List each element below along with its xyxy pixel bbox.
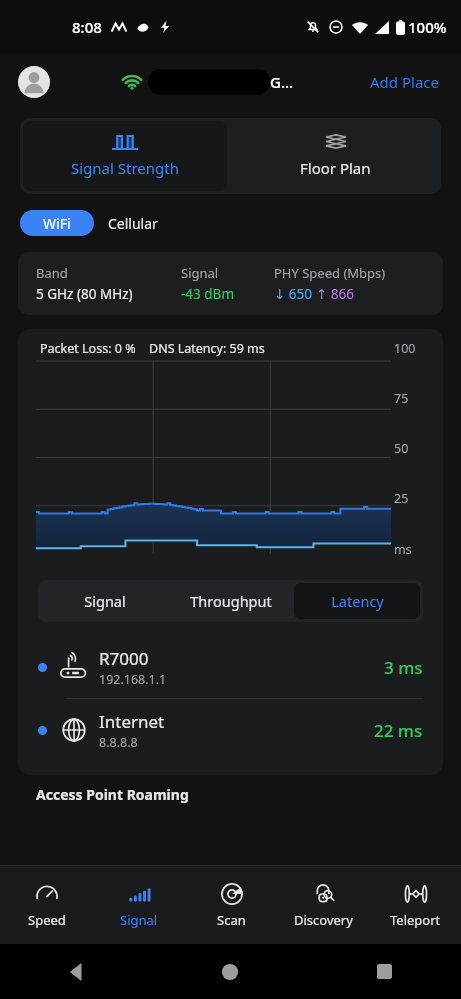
staticText: 8:08 [72, 17, 102, 37]
other: Back [68, 963, 86, 981]
staticText: Band [36, 264, 68, 282]
staticText: Signal Strength [71, 158, 179, 178]
staticText: DNS Latency: 59 ms [149, 340, 265, 357]
other: Home [221, 963, 239, 981]
button[interactable]: Signal [41, 583, 168, 619]
staticText: PHY Speed (Mbps) [274, 264, 386, 282]
button[interactable]: Floor Plan [230, 118, 441, 194]
staticText: 22 ms [374, 719, 423, 742]
staticText: ms [394, 541, 412, 558]
staticText: 50 [394, 440, 409, 457]
staticText: 75 [394, 390, 409, 407]
button[interactable]: WiFi [20, 210, 94, 236]
staticText: ↓ 650 [274, 285, 316, 303]
button[interactable]: R7000 [18, 636, 443, 698]
button[interactable]: Latency [294, 583, 420, 619]
staticText: 100% [408, 17, 447, 37]
staticText: Teleport [390, 911, 441, 929]
staticText: Signal [120, 911, 158, 929]
button[interactable]: Band [18, 252, 443, 315]
button[interactable]: Scan [185, 866, 277, 944]
staticText: Throughput [190, 591, 272, 611]
button[interactable]: Signal Strength [23, 121, 227, 191]
button[interactable]: Throughput [168, 583, 294, 619]
button[interactable]: Internet [18, 699, 443, 761]
staticText: -43 dBm [181, 285, 235, 303]
staticText: Floor Plan [300, 158, 371, 178]
staticText: 5 GHz (80 MHz) [36, 285, 133, 303]
staticText: 25 [394, 490, 409, 507]
button[interactable]: Signal [93, 866, 185, 944]
staticText: Access Point Roaming [36, 785, 189, 804]
staticText: Cellular [108, 214, 158, 233]
staticText: Scan [217, 911, 246, 929]
staticText: Add Place [370, 72, 439, 92]
staticText: Signal [84, 591, 126, 611]
staticText: G... [270, 72, 294, 92]
staticText: 192.168.1.1 [99, 671, 167, 688]
staticText: ↑ 866 [316, 285, 354, 303]
staticText: R7000 [99, 647, 149, 670]
button[interactable]: Speed [0, 866, 93, 944]
button[interactable]: Cellular [94, 210, 172, 236]
staticText: Latency [331, 591, 384, 611]
staticText: 3 ms [384, 656, 423, 679]
staticText: Packet Loss: 0 % [40, 340, 136, 357]
staticText: Discovery [294, 911, 353, 929]
button[interactable]: Discovery [277, 866, 369, 944]
staticText: Signal [181, 264, 219, 282]
staticText: 100 [394, 340, 416, 357]
staticText: 8.8.8.8 [99, 734, 138, 751]
staticText: Speed [28, 911, 66, 929]
staticText: WiFi [43, 214, 71, 233]
button[interactable]: Teleport [369, 866, 461, 944]
button[interactable]: Add Place [366, 68, 443, 96]
other: Recents [377, 964, 392, 979]
button[interactable]: Account [18, 66, 50, 98]
staticText: Internet [99, 710, 165, 733]
